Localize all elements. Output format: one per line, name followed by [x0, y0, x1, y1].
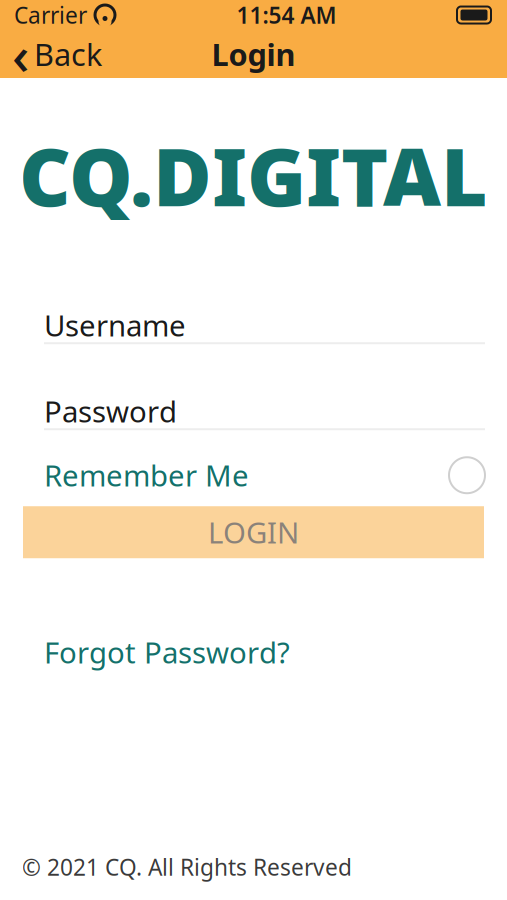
button[interactable]: Remember Me: [0, 452, 507, 498]
staticText: Username: [44, 306, 186, 345]
staticText: CQ.DIGITAL: [19, 122, 488, 228]
button[interactable]: LOGIN: [23, 506, 484, 558]
staticText: © 2021 CQ. All Rights Reserved: [22, 852, 352, 882]
staticText: Back: [34, 34, 102, 74]
staticText: Forgot Password?: [44, 633, 290, 672]
staticText: Login: [211, 34, 295, 74]
staticText: Remember Me: [44, 456, 249, 495]
button[interactable]: ‹: [0, 30, 114, 78]
staticText: ‹: [12, 19, 29, 89]
button[interactable]: Forgot Password?: [0, 634, 507, 670]
staticText: LOGIN: [208, 513, 299, 552]
staticText: 11:54 AM: [236, 0, 336, 30]
staticText: Carrier: [14, 0, 87, 30]
staticText: Password: [44, 392, 177, 431]
